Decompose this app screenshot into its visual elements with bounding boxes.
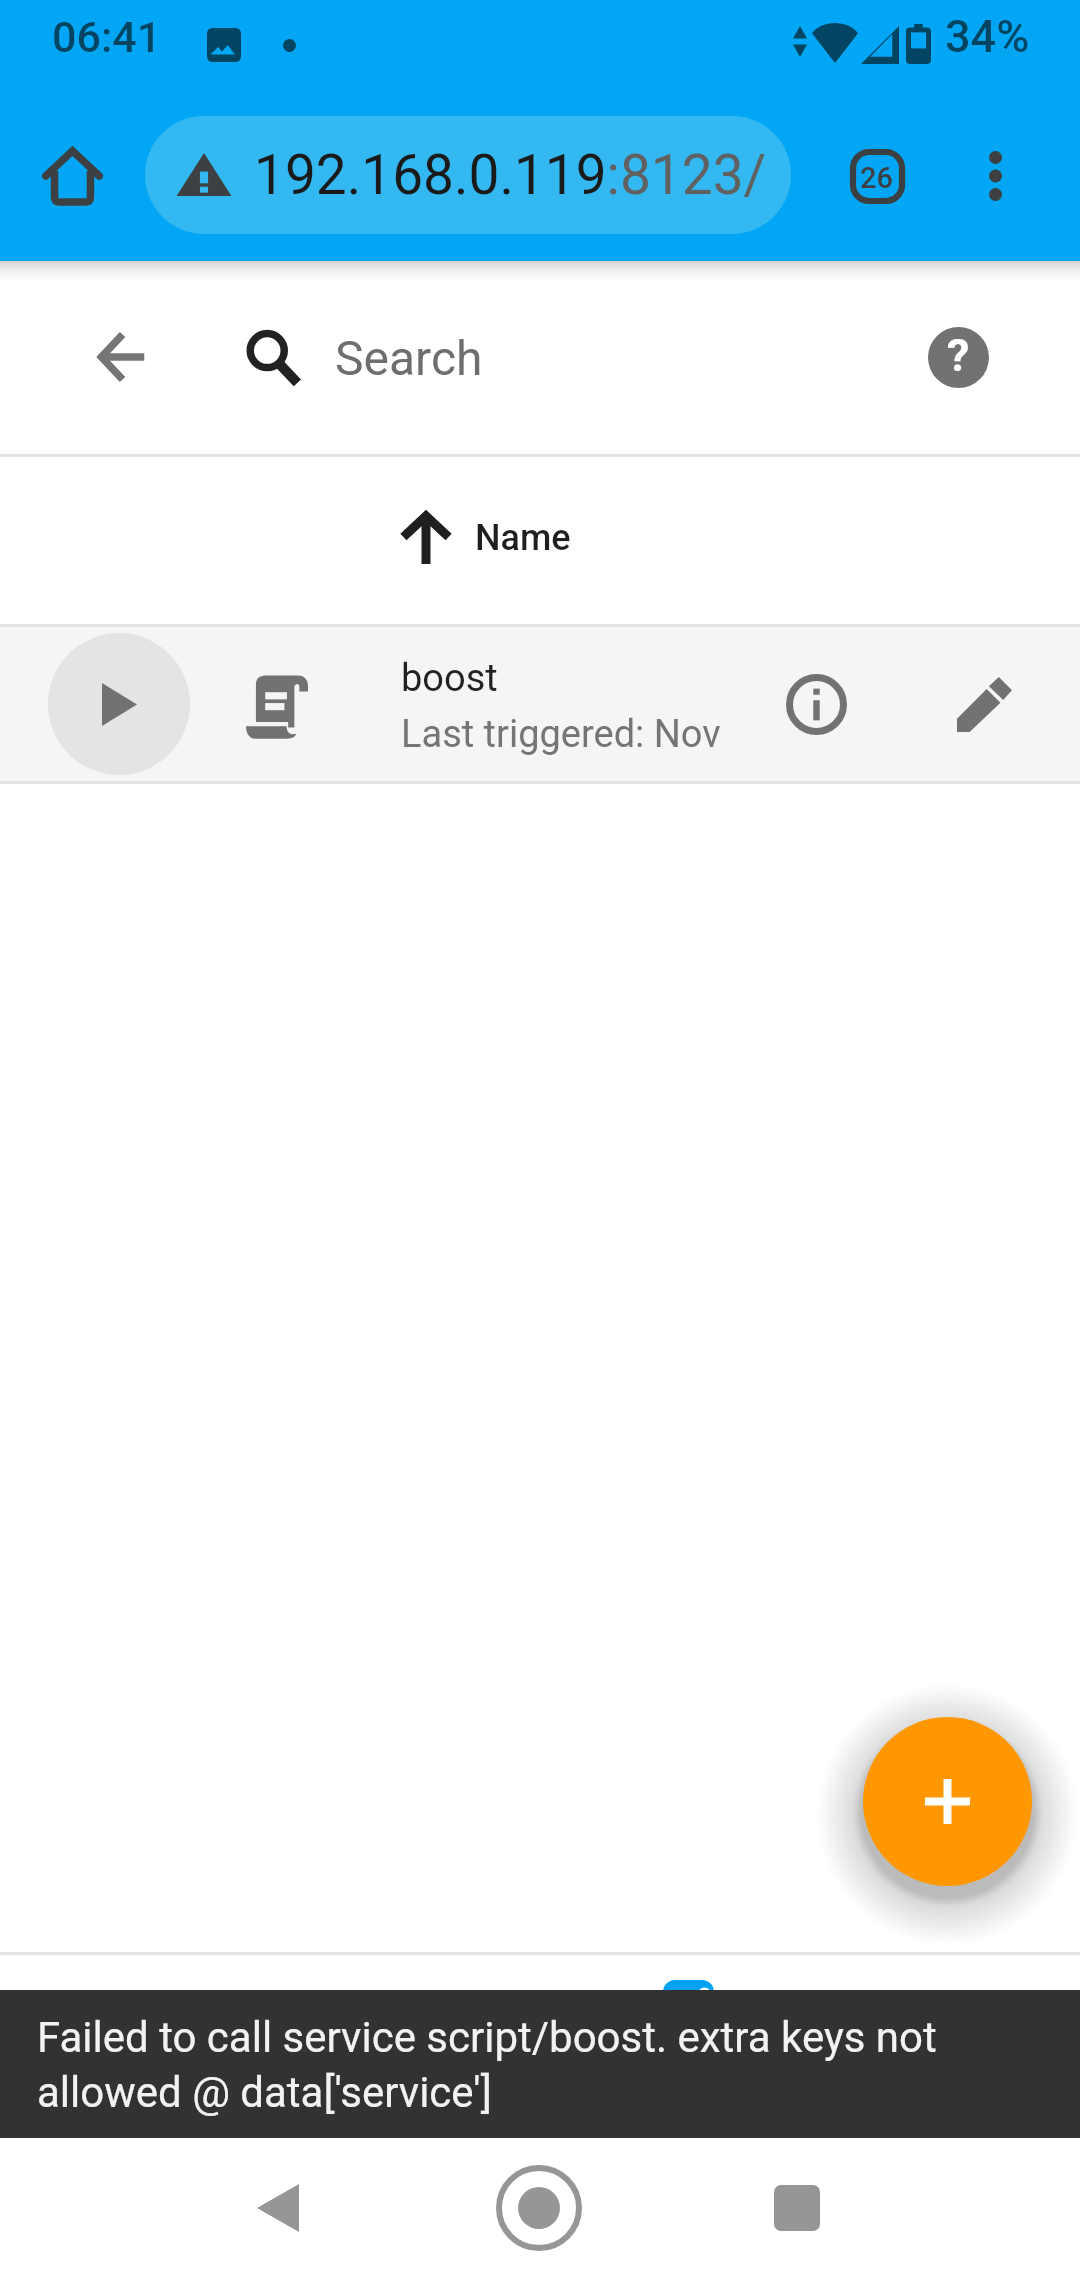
staticText: 34% <box>945 10 1030 63</box>
button[interactable]: Recent apps <box>751 2162 843 2254</box>
staticText: ? <box>947 329 970 382</box>
button[interactable]: Information <box>774 662 858 746</box>
button[interactable]: More options <box>950 131 1040 221</box>
staticText: 06:41 <box>52 12 162 62</box>
staticText: Name <box>475 517 571 559</box>
staticText: Search <box>335 330 483 386</box>
button[interactable]: Home <box>493 2162 585 2254</box>
button[interactable]: Run script <box>48 633 190 775</box>
staticText: boost <box>401 656 498 701</box>
staticText: 26 <box>860 161 893 195</box>
button[interactable]: Back <box>82 315 166 399</box>
staticText: Failed to call service script/boost. ext… <box>37 2013 937 2117</box>
staticText: 192.168.0.119:8123/ <box>254 143 767 207</box>
button[interactable]: Back <box>232 2162 324 2254</box>
button[interactable]: Add script <box>863 1717 1032 1886</box>
button[interactable]: Run script <box>0 627 1080 781</box>
staticText: Last triggered: Nov <box>401 712 721 757</box>
button[interactable]: Help <box>916 315 1000 399</box>
button[interactable]: 192.168.0.119:8123/ <box>145 116 791 234</box>
button[interactable]: Failed to call service script/boost. ext… <box>0 1990 1080 2138</box>
button[interactable]: Tabs <box>832 131 922 221</box>
button[interactable]: Edit <box>942 662 1026 746</box>
button[interactable]: Name <box>0 457 1080 624</box>
button[interactable]: Home <box>27 131 117 221</box>
